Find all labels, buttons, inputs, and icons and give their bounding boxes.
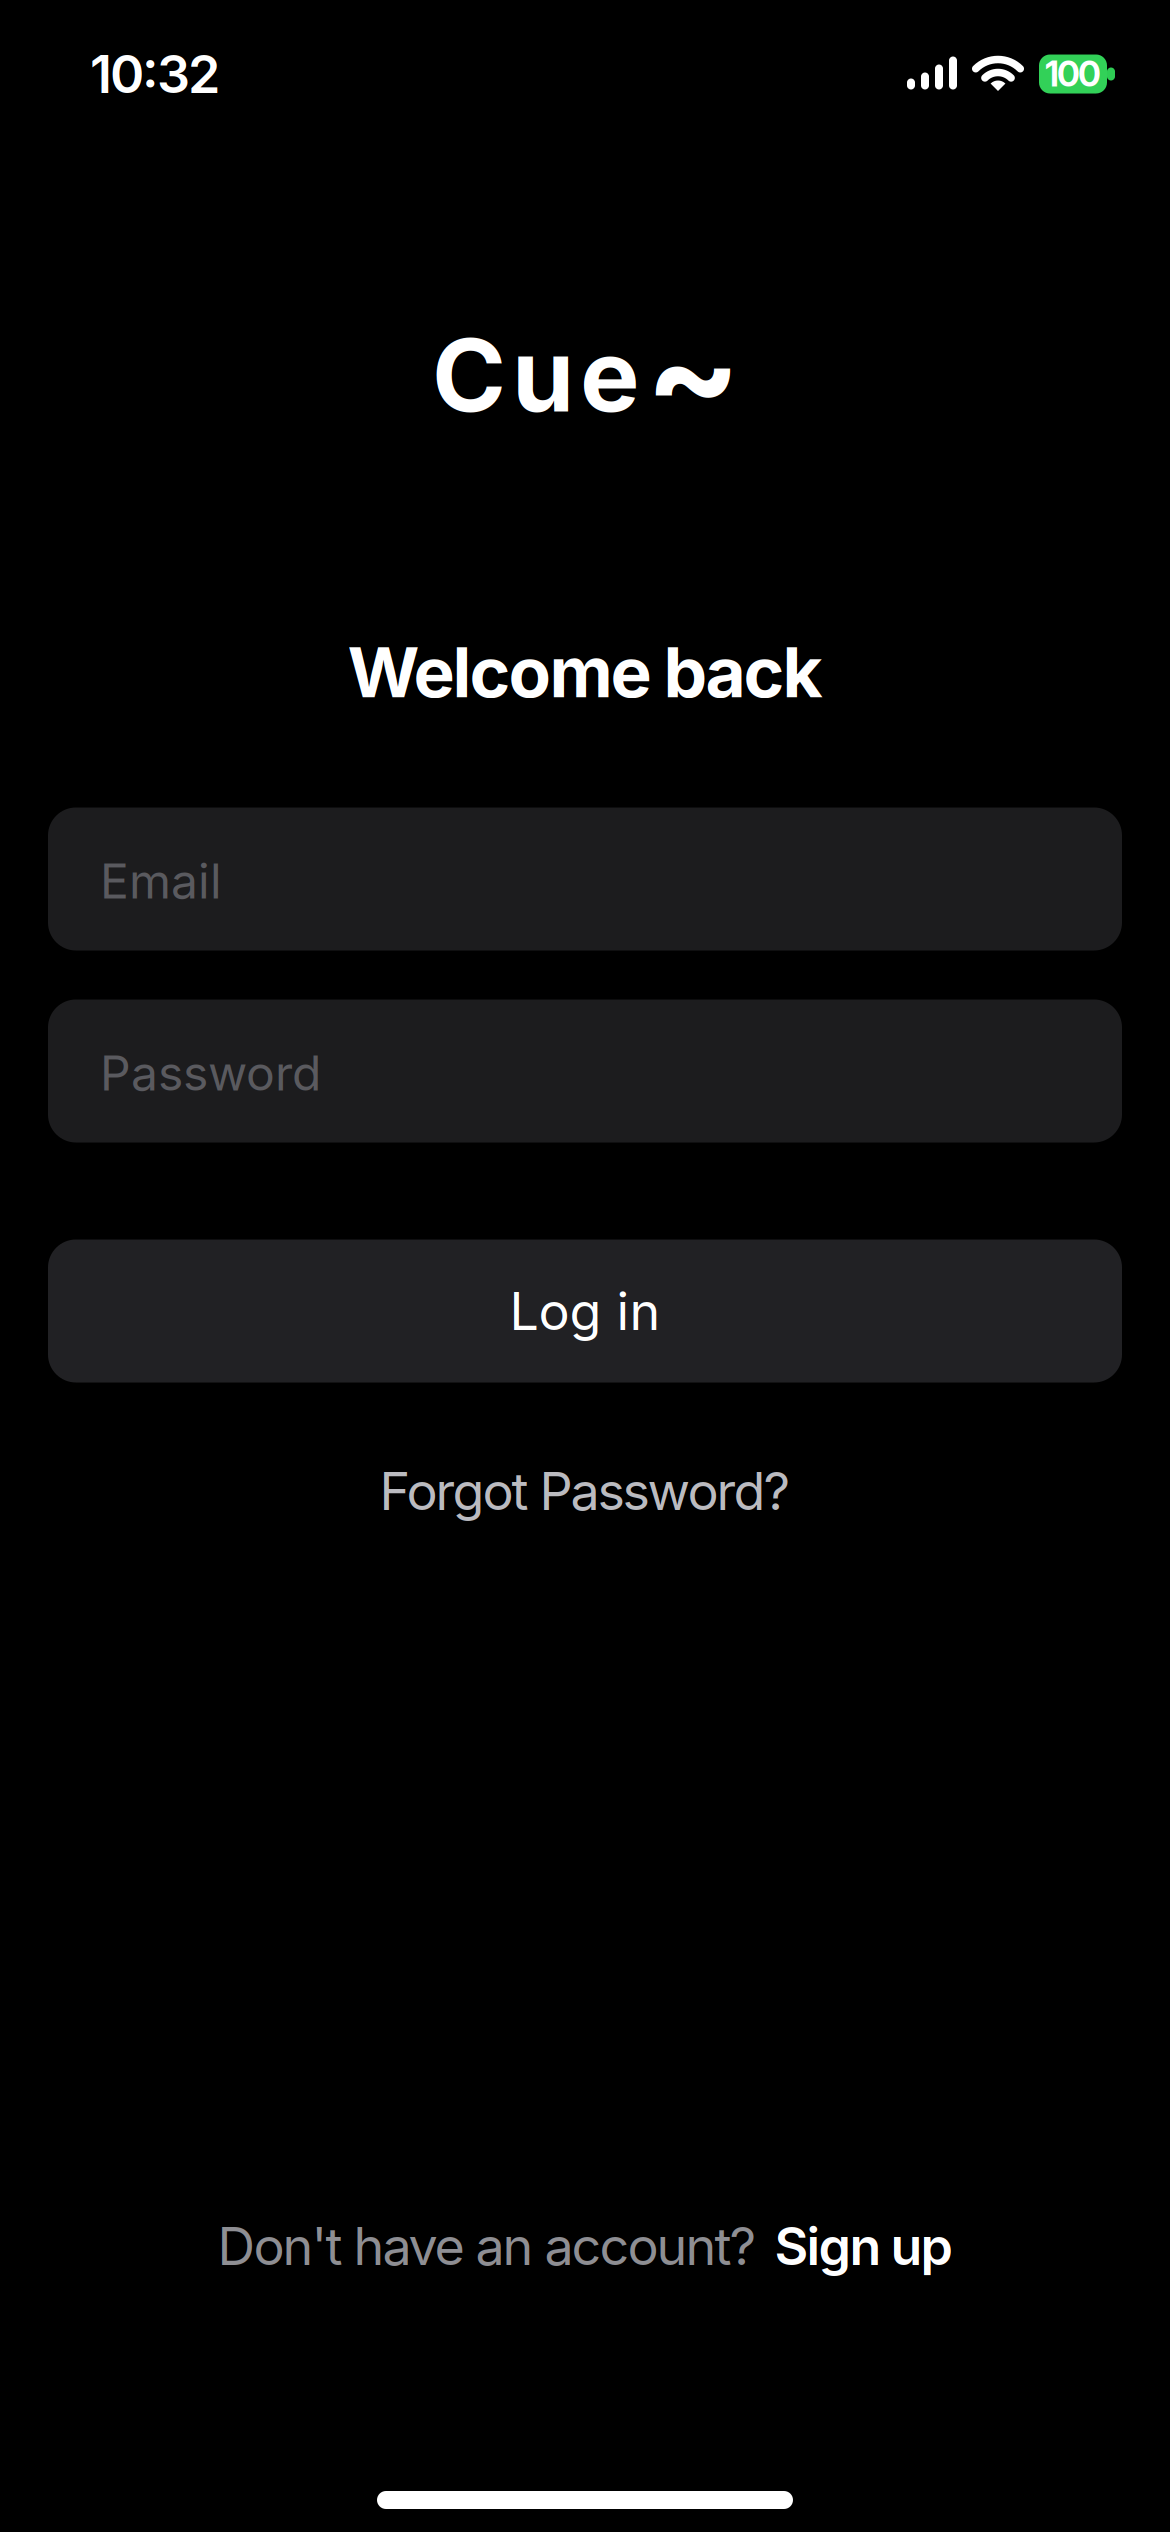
button[interactable]: Email xyxy=(48,807,1122,950)
staticText: 100 xyxy=(1045,53,1101,95)
button[interactable]: Log in xyxy=(48,1239,1122,1382)
staticText: Don't have an account? xyxy=(217,2214,756,2277)
staticText: Cue xyxy=(432,314,640,435)
staticText: ~ xyxy=(645,286,741,457)
button[interactable]: Forgot Password? xyxy=(379,1459,790,1522)
button[interactable]: Password xyxy=(48,999,1122,1142)
staticText: Welcome back xyxy=(347,630,822,714)
staticText: Log in xyxy=(509,1279,660,1342)
staticText: Email xyxy=(100,852,222,910)
button[interactable]: Sign up xyxy=(774,2214,952,2277)
staticText: Sign up xyxy=(774,2214,952,2277)
staticText: 10:32 xyxy=(90,42,220,105)
staticText: Forgot Password? xyxy=(379,1459,790,1522)
staticText: Password xyxy=(100,1044,321,1102)
